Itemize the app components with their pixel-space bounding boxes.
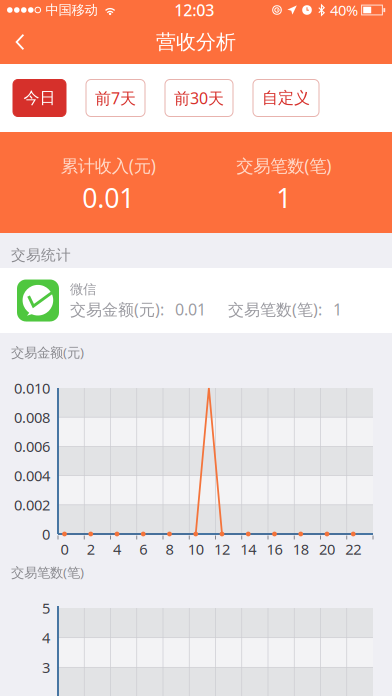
staticText: 前30天	[174, 87, 224, 109]
staticText: 自定义	[262, 88, 310, 108]
button[interactable]: 自定义	[253, 79, 319, 116]
staticText: 前7天	[95, 87, 136, 109]
staticText: 交易金额(元):	[70, 299, 164, 320]
staticText: 18	[293, 539, 309, 559]
staticText: 0.008	[14, 407, 50, 427]
staticText: 交易金额(元)	[11, 343, 84, 361]
staticText: 交易笔数(笔)	[236, 154, 331, 177]
staticText: 16	[266, 539, 282, 559]
staticText: 微信	[70, 281, 96, 298]
staticText: 14	[240, 539, 256, 559]
staticText: 4	[113, 539, 121, 559]
staticText: 0.006	[14, 437, 50, 456]
staticText: 1	[333, 299, 342, 320]
staticText: 40%	[330, 0, 358, 20]
staticText: 5	[42, 598, 50, 618]
staticText: 22	[345, 539, 361, 559]
staticText: 交易笔数(笔)	[11, 563, 84, 581]
staticText: 0.01	[175, 299, 206, 320]
button[interactable]: 前7天	[86, 79, 145, 116]
staticText: 12	[214, 539, 230, 559]
button[interactable]: 前30天	[165, 79, 233, 116]
staticText: 12:03	[174, 0, 214, 21]
staticText: 交易统计	[11, 246, 71, 264]
staticText: 1	[276, 180, 291, 215]
staticText: 营收分析	[156, 30, 236, 54]
staticText: 0.010	[14, 378, 50, 398]
staticText: 10	[188, 539, 204, 559]
staticText: 中国移动	[46, 2, 98, 18]
staticText: 今日	[23, 88, 55, 108]
staticText: 6	[139, 539, 147, 559]
staticText: 0.002	[14, 495, 50, 515]
staticText: 0	[42, 524, 50, 544]
button[interactable]: 微信	[0, 268, 392, 333]
staticText: 0.004	[14, 466, 50, 485]
staticText: 3	[42, 658, 50, 677]
staticText: 0.01	[82, 180, 134, 215]
staticText: 交易笔数(笔):	[228, 299, 322, 320]
staticText: 20	[319, 539, 335, 559]
button[interactable]: Back	[0, 20, 37, 64]
staticText: 2	[87, 539, 95, 559]
staticText: 0	[60, 539, 68, 559]
button[interactable]: 今日	[13, 79, 66, 116]
staticText: 4	[42, 628, 50, 647]
staticText: 累计收入(元)	[61, 154, 156, 177]
staticText: 8	[165, 539, 173, 559]
